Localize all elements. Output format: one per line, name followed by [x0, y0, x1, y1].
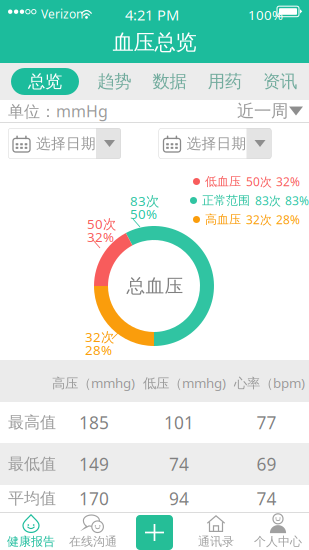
staticText: 健康报告 — [7, 534, 55, 549]
staticText: 83次 — [130, 192, 159, 210]
staticText: 74 — [169, 452, 189, 475]
staticText: 83% — [285, 192, 309, 208]
staticText: 心率（bpm) — [234, 374, 305, 392]
staticText: 平均值 — [8, 489, 56, 508]
staticText: 32次 — [85, 328, 114, 346]
staticText: 83次 — [255, 192, 281, 208]
staticText: 185 — [79, 411, 109, 434]
staticText: 低压（mmhg) — [143, 374, 226, 392]
button[interactable]: 通讯录 — [185, 512, 247, 549]
staticText: 50次 — [246, 173, 272, 189]
staticText: 28% — [276, 211, 300, 227]
staticText: 最低值 — [8, 454, 56, 474]
staticText: 69 — [256, 452, 276, 475]
staticText: 血压总览 — [112, 29, 196, 56]
staticText: 资讯 — [263, 71, 297, 92]
staticText: 32% — [276, 173, 300, 189]
staticText: Verizon — [41, 6, 83, 22]
button[interactable]: 健康报告 — [0, 512, 62, 549]
staticText: 50% — [130, 205, 157, 223]
staticText: 通讯录 — [198, 534, 234, 549]
staticText: 数据 — [152, 71, 186, 92]
button[interactable]: Add — [136, 515, 173, 550]
button[interactable]: 近一周 — [237, 100, 309, 122]
staticText: 在线沟通 — [69, 534, 117, 549]
staticText: 100% — [248, 6, 283, 24]
staticText: 170 — [79, 487, 109, 510]
staticText: 个人中心 — [254, 534, 302, 549]
button[interactable]: 用药 — [205, 68, 245, 95]
staticText: 32% — [87, 228, 114, 246]
staticText: 高压（mmhg) — [52, 374, 135, 392]
staticText: 4:21 PM — [125, 5, 179, 24]
button[interactable]: 趋势 — [94, 68, 134, 95]
staticText: 94 — [169, 487, 189, 510]
button[interactable]: 在线沟通 — [62, 512, 124, 549]
button[interactable]: 选择日期 — [8, 128, 121, 159]
staticText: 单位：mmHg — [8, 100, 108, 122]
staticText: 近一周 — [237, 100, 288, 122]
staticText: 低血压 — [205, 174, 241, 189]
staticText: 101 — [164, 411, 194, 434]
staticText: 32次 — [246, 211, 272, 227]
staticText: 正常范围 — [202, 193, 250, 208]
staticText: 149 — [79, 452, 109, 475]
staticText: 总览 — [28, 71, 62, 92]
button[interactable]: 个人中心 — [247, 512, 309, 549]
staticText: 选择日期 — [186, 134, 246, 152]
button[interactable]: 总览 — [11, 68, 79, 95]
staticText: 74 — [256, 487, 276, 510]
staticText: 28% — [85, 341, 112, 359]
staticText: 用药 — [208, 71, 242, 92]
staticText: 高血压 — [205, 212, 241, 227]
button[interactable]: 选择日期 — [158, 128, 271, 159]
staticText: 总血压 — [126, 274, 183, 297]
staticText: 趋势 — [97, 71, 131, 92]
button[interactable]: 资讯 — [260, 68, 300, 95]
staticText: 最高值 — [8, 413, 56, 432]
staticText: 50次 — [87, 215, 116, 233]
staticText: 77 — [256, 411, 276, 434]
staticText: 选择日期 — [36, 134, 96, 152]
button[interactable]: 数据 — [149, 68, 189, 95]
